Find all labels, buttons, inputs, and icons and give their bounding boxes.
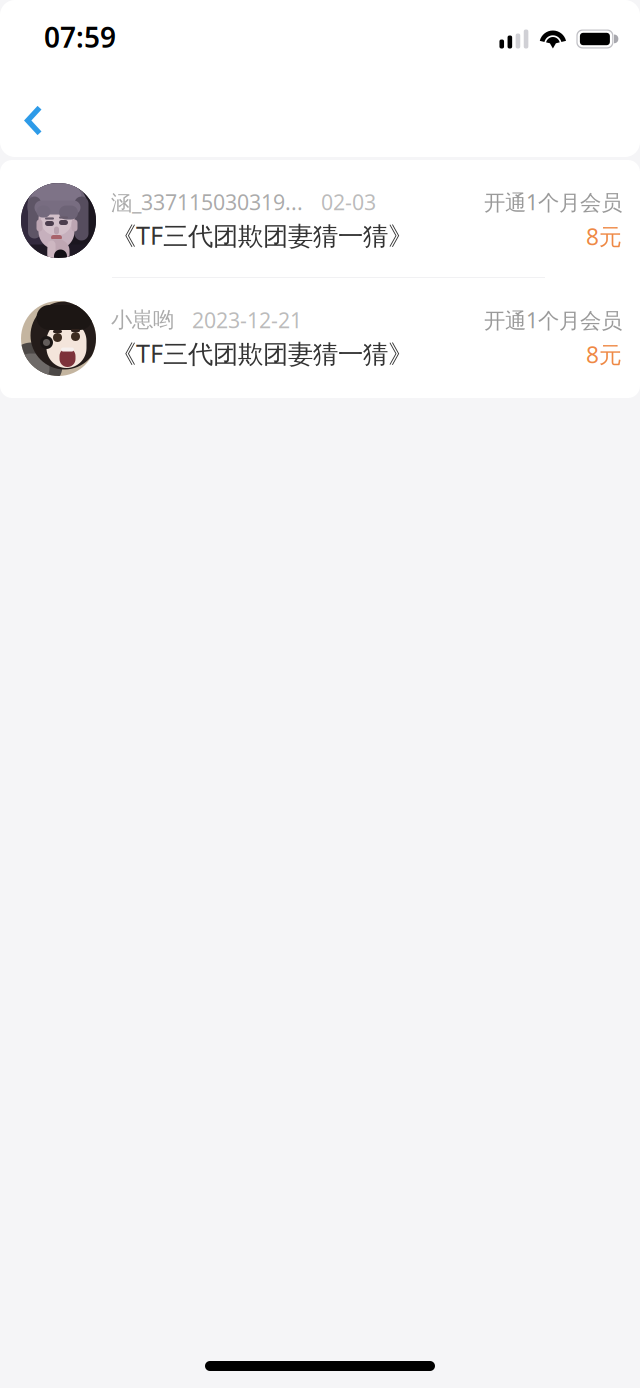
staticText: 涵_337115030319...: [111, 188, 303, 216]
button[interactable]: Back: [0, 77, 72, 155]
staticText: 《TF三代团欺团妻猜一猜》: [111, 218, 413, 252]
staticText: 《TF三代团欺团妻猜一猜》: [111, 336, 413, 370]
staticText: 07:59: [44, 18, 116, 56]
staticText: 小崽哟: [111, 307, 174, 333]
staticText: 8元: [586, 339, 622, 369]
button[interactable]: 小崽哟: [0, 278, 640, 395]
staticText: 8元: [586, 221, 622, 251]
button[interactable]: 涵_337115030319...: [0, 160, 640, 277]
staticText: 开通1个月会员: [484, 306, 622, 334]
staticText: 开通1个月会员: [484, 188, 622, 216]
staticText: 02-03: [321, 188, 376, 216]
staticText: 2023-12-21: [192, 306, 302, 334]
